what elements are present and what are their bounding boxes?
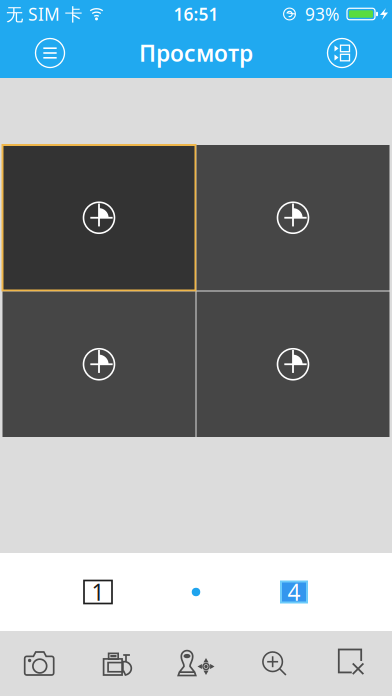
button[interactable]: 4 — [280, 580, 308, 603]
button[interactable]: Zoom in — [235, 631, 314, 696]
staticText: Просмотр — [139, 38, 253, 68]
staticText: 1 — [91, 577, 104, 607]
staticText: 4 — [287, 577, 300, 607]
button[interactable]: Add camera — [196, 291, 389, 437]
button[interactable]: 1 — [84, 580, 112, 603]
button[interactable]: Add camera — [2, 145, 195, 290]
button[interactable]: Close — [314, 631, 392, 696]
button[interactable]: Layout — [306, 28, 378, 78]
button[interactable]: Snapshot — [0, 631, 78, 696]
staticText: 16:51 — [173, 2, 218, 25]
button[interactable]: Record — [78, 631, 157, 696]
button[interactable]: PTZ control — [157, 631, 235, 696]
staticText: 无 SIM 卡 — [6, 2, 82, 25]
staticText: 93% — [305, 2, 339, 25]
button[interactable]: Add camera — [2, 291, 195, 437]
button[interactable]: Menu — [14, 28, 86, 78]
button[interactable]: Add camera — [196, 145, 389, 290]
